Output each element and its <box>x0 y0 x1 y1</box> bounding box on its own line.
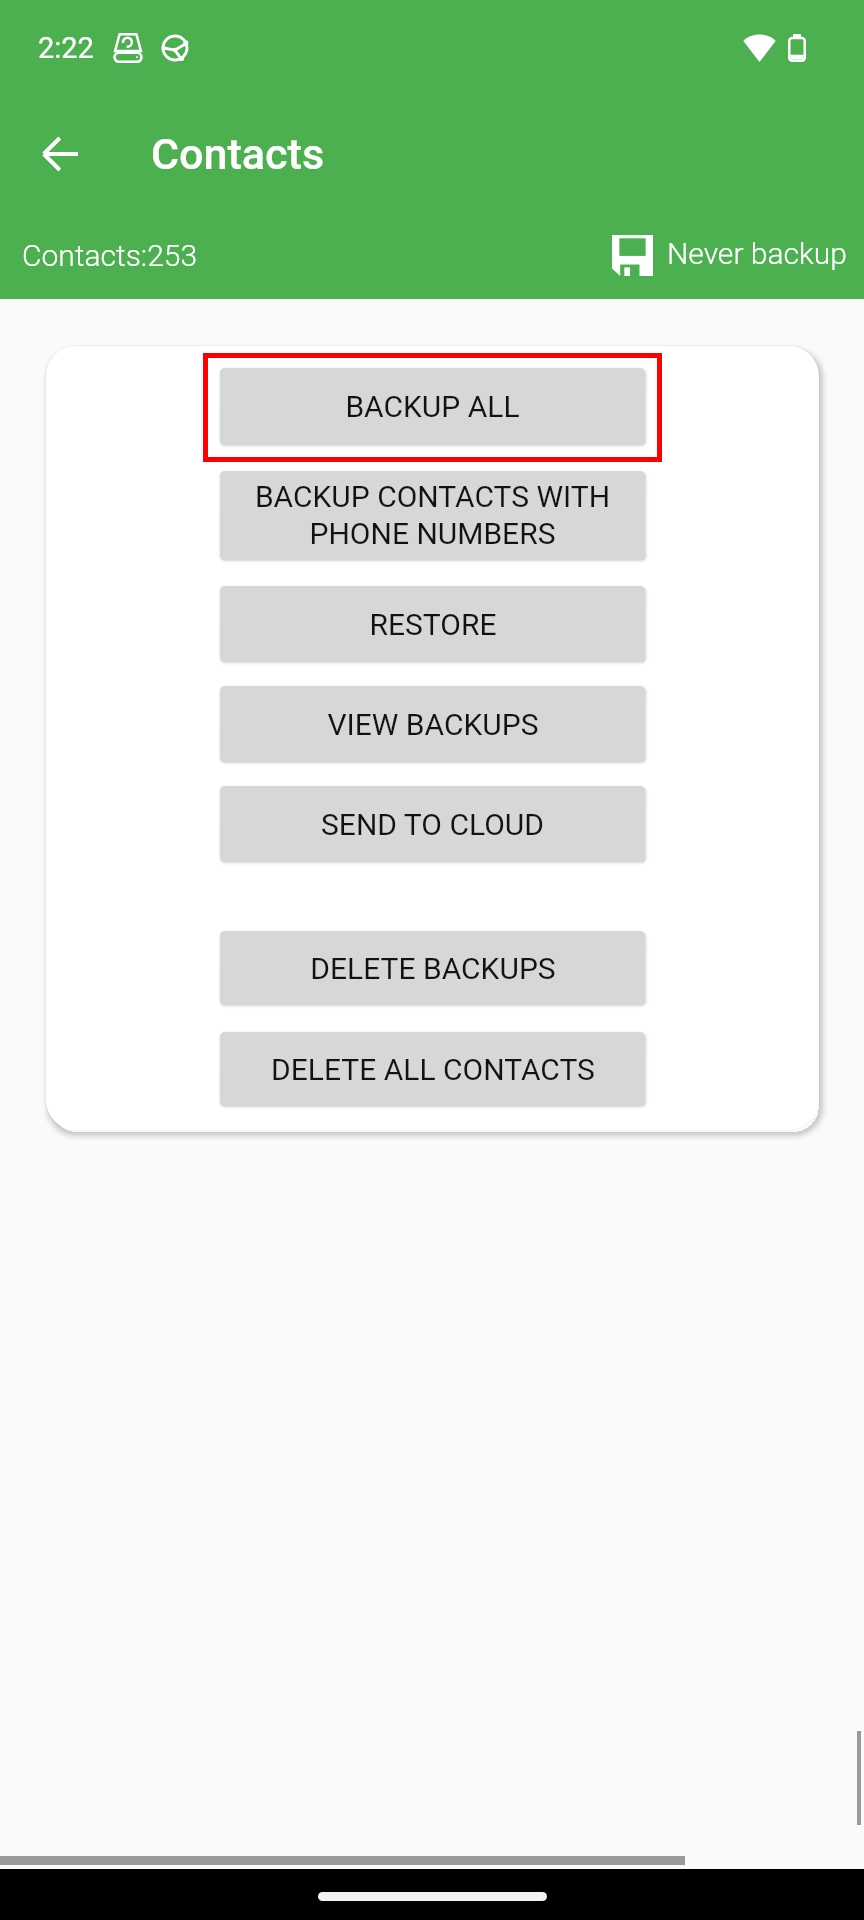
button[interactable]: Never backup <box>612 235 847 276</box>
button[interactable]: DELETE BACKUPS <box>220 931 645 1005</box>
staticText: Contacts <box>151 129 325 179</box>
staticText: Never backup <box>667 236 847 271</box>
staticText: RESTORE <box>369 607 497 642</box>
button[interactable]: RESTORE <box>220 586 645 662</box>
button[interactable]: DELETE ALL CONTACTS <box>220 1032 645 1106</box>
staticText: SEND TO CLOUD <box>321 807 544 842</box>
button[interactable]: BACKUP ALL <box>220 368 645 445</box>
staticText: BACKUP CONTACTS WITH PHONE NUMBERS <box>220 479 645 552</box>
staticText: Contacts:253 <box>22 238 198 273</box>
button[interactable]: BACKUP CONTACTS WITH PHONE NUMBERS <box>220 471 645 560</box>
staticText: DELETE ALL CONTACTS <box>271 1052 595 1087</box>
button[interactable]: Back <box>20 114 100 194</box>
staticText: DELETE BACKUPS <box>310 951 556 986</box>
button[interactable]: SEND TO CLOUD <box>220 786 645 862</box>
staticText: BACKUP ALL <box>345 389 520 424</box>
button[interactable]: VIEW BACKUPS <box>220 686 645 762</box>
staticText: VIEW BACKUPS <box>327 707 539 742</box>
staticText: 2:22 <box>38 31 94 65</box>
